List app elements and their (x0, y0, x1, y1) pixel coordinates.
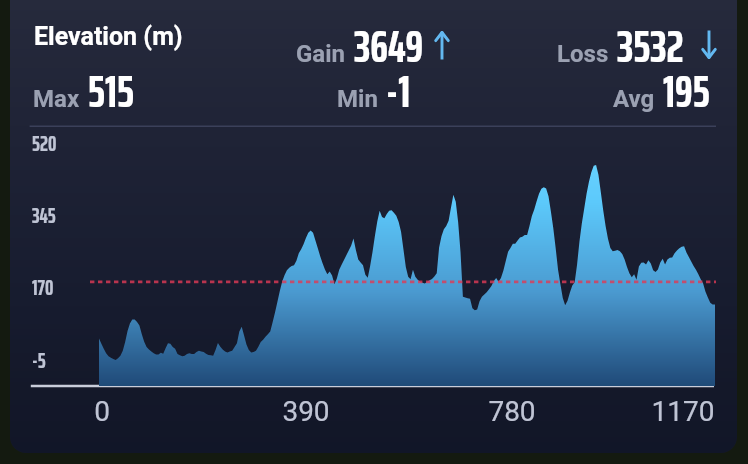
staticText: Elevation (m) (34, 22, 183, 51)
staticText: -5 (32, 344, 46, 377)
button[interactable]: Elevation (m) (10, 0, 737, 453)
staticText: Avg (613, 85, 655, 113)
staticText: 345 (32, 199, 56, 232)
staticText: Max (33, 85, 80, 113)
staticText: 520 (32, 127, 57, 160)
staticText: 3532 (617, 11, 684, 82)
staticText: 3649 (354, 11, 424, 82)
staticText: Min (337, 85, 378, 113)
staticText: 195 (663, 56, 710, 127)
other: Total descent (701, 29, 717, 59)
staticText: -1 (386, 56, 411, 127)
staticText: Gain (296, 40, 346, 68)
other: Total ascent (434, 31, 450, 61)
staticText: 390 (266, 395, 346, 428)
staticText: 1170 (643, 395, 723, 428)
staticText: 0 (62, 395, 142, 428)
staticText: 780 (472, 395, 552, 428)
staticText: Loss (557, 40, 609, 68)
staticText: 170 (32, 271, 54, 304)
staticText: 515 (88, 56, 135, 127)
